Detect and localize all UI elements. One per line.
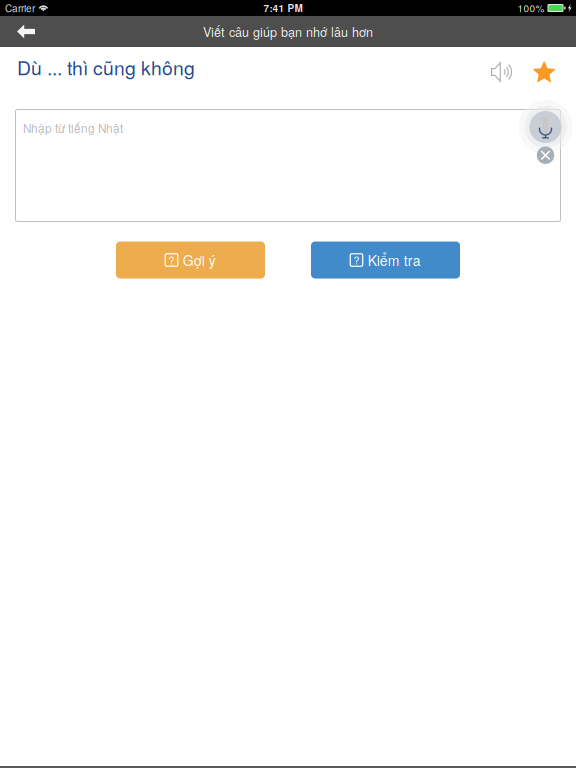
button[interactable]: Play pronunciation	[485, 54, 519, 90]
staticText: Carrier	[5, 1, 35, 15]
staticText: 100%	[517, 1, 544, 15]
button[interactable]: Favorite	[526, 53, 562, 91]
staticText: Dù ... thì cũng không	[17, 53, 195, 81]
button[interactable]: ?	[116, 241, 265, 278]
staticText: Viết câu giúp bạn nhớ lâu hơn	[203, 22, 373, 40]
staticText: Gợi ý	[183, 250, 216, 270]
button[interactable]: Dictate	[518, 100, 572, 154]
button[interactable]: ?	[311, 241, 460, 278]
staticText: Kiểm tra	[368, 250, 421, 270]
staticText: Nhập từ tiếng Nhật	[23, 119, 123, 136]
button[interactable]: Back	[0, 16, 49, 47]
staticText: ?	[353, 252, 359, 268]
staticText: ?	[168, 252, 174, 268]
staticText: 7:41 PM	[263, 1, 302, 15]
button[interactable]: Clear text	[537, 146, 554, 164]
